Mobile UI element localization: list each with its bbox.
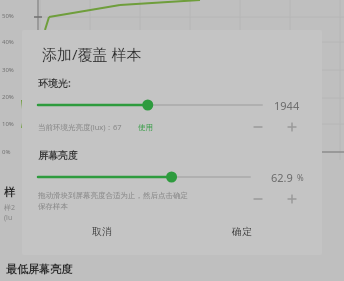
button[interactable]: Slider: [38, 168, 250, 186]
button[interactable]: Decrease: [250, 191, 266, 207]
button[interactable]: Slider: [38, 96, 262, 114]
staticText: 屏幕亮度: [38, 149, 78, 162]
staticText: 拖动滑块到屏幕亮度合适为止，然后点击确定 保存样本: [38, 191, 188, 211]
staticText: 使用: [138, 123, 153, 132]
staticText: 40%: [2, 38, 14, 46]
staticText: 当前环境光亮度(lux)：67: [38, 122, 122, 132]
staticText: 0%: [2, 148, 11, 156]
staticText: 1944: [274, 98, 300, 113]
button[interactable]: 确定: [222, 221, 262, 242]
button[interactable]: Increase: [284, 119, 300, 135]
button[interactable]: 使用: [136, 123, 155, 132]
staticText: 确定: [232, 225, 252, 238]
staticText: 最低屏幕亮度: [6, 262, 72, 276]
staticText: 50%: [2, 12, 14, 20]
button[interactable]: Decrease: [250, 119, 266, 135]
staticText: %: [297, 172, 304, 183]
staticText: 20%: [2, 93, 14, 101]
button[interactable]: Increase: [284, 191, 300, 207]
staticText: 环境光:: [38, 76, 71, 90]
staticText: 样: [4, 185, 15, 199]
staticText: 10%: [2, 120, 14, 128]
staticText: 样2 (lu: [4, 203, 16, 223]
staticText: 添加/覆盖 样本: [42, 44, 142, 64]
staticText: 30%: [2, 66, 14, 74]
staticText: 62.9: [271, 170, 293, 185]
button[interactable]: 取消: [82, 221, 122, 242]
staticText: 取消: [92, 225, 112, 238]
